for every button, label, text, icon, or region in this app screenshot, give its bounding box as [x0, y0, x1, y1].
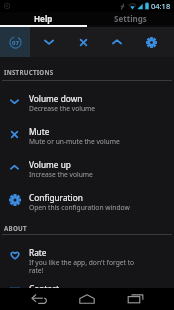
- button[interactable]: Mute: [0, 114, 174, 147]
- button[interactable]: Back: [15, 288, 63, 310]
- staticText: ABOUT: [4, 224, 27, 232]
- staticText: Volume down: [29, 93, 83, 104]
- staticText: Help: [34, 13, 53, 24]
- staticText: If you like the app, don't forget to rat…: [29, 258, 144, 275]
- staticText: Mute: [29, 126, 50, 137]
- staticText: Decrease the volume: [29, 104, 96, 113]
- button[interactable]: Help: [0, 12, 87, 25]
- staticText: Mute or un-mute the volume: [29, 137, 120, 146]
- button[interactable]: Configuration: [0, 180, 174, 213]
- staticText: 04:18: [151, 1, 171, 11]
- button[interactable]: App: [0, 27, 30, 57]
- staticText: Volume up: [29, 159, 71, 170]
- staticText: Increase the volume: [29, 170, 93, 179]
- staticText: INSTRUCTIONS: [4, 68, 54, 76]
- button[interactable]: Home: [63, 288, 111, 310]
- button[interactable]: Volume up: [0, 147, 174, 180]
- button[interactable]: Volume up: [100, 27, 134, 57]
- staticText: Rate: [29, 247, 47, 258]
- staticText: Configuration: [29, 192, 83, 203]
- button[interactable]: Volume down: [0, 81, 174, 114]
- staticText: Send us an email: [29, 294, 83, 303]
- button[interactable]: Contact: [0, 271, 174, 288]
- staticText: Settings: [114, 13, 147, 24]
- staticText: 07: [12, 39, 19, 47]
- button[interactable]: Mute: [66, 27, 100, 57]
- staticText: Contact: [29, 283, 60, 294]
- button[interactable]: Recents: [111, 288, 159, 310]
- button[interactable]: Settings: [134, 27, 168, 57]
- button[interactable]: Settings: [87, 12, 174, 25]
- button[interactable]: Volume down: [32, 27, 66, 57]
- button[interactable]: Rate: [0, 235, 174, 271]
- staticText: Open this configuration window: [29, 203, 130, 212]
